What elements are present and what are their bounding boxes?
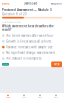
staticText: Account [51,2,62,5]
staticText: Section B · Applied reasoning [2,21,21,23]
button[interactable]: Home [0,95,16,98]
button[interactable]: Next [51,61,62,67]
staticText: acme [2,2,10,5]
staticText: No significant change was observed [6,51,55,55]
staticText: Which statement best describes the resul… [2,24,54,32]
button[interactable]: The data set is incomplete [2,56,62,61]
staticText: Variance increases with sample size [6,45,53,49]
staticText: Growth is linear across all cohorts [6,40,51,43]
staticText: The data set is incomplete [6,57,42,60]
staticText: Inbox [38,97,42,98]
button[interactable]: More [48,95,64,98]
button[interactable]: Growth is linear across all cohorts [2,38,62,44]
staticText: Home [6,97,10,98]
button[interactable]: The trend reverses after week four [2,33,62,38]
staticText: Saved [3,63,8,65]
staticText: Next [54,62,60,66]
button[interactable]: Dashboard [23,2,37,5]
button[interactable]: Account [51,2,62,5]
staticText: Question 8 of 20 [2,12,27,16]
staticText: The trend reverses after week four [6,34,53,37]
button[interactable]: Variance increases with sample size [2,44,62,50]
staticText: Proctored Assessment — Module 3 [2,8,52,12]
button[interactable]: Home [2,2,10,5]
staticText: Tests [22,97,26,98]
button[interactable]: Inbox [32,95,48,98]
staticText: More [54,97,58,98]
button[interactable]: No significant change was observed [2,50,62,56]
button[interactable]: Tests [16,95,32,98]
staticText: Dashboard [23,2,37,5]
